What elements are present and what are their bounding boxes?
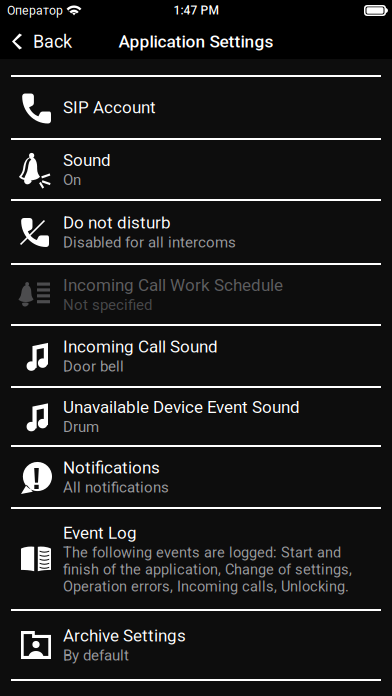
staticText: Back xyxy=(33,31,72,52)
button[interactable]: Notifications xyxy=(0,447,392,507)
button[interactable]: Archive Settings xyxy=(0,611,392,679)
staticText: Notifications xyxy=(63,458,160,478)
staticText: Sound xyxy=(63,150,111,170)
staticText: Incoming Call Work Schedule xyxy=(63,275,283,295)
staticText: Archive Settings xyxy=(63,626,186,646)
staticText: All notifications xyxy=(63,479,169,496)
button[interactable]: SIP Account xyxy=(0,77,392,138)
staticText: SIP Account xyxy=(63,97,156,117)
staticText: The following events are logged: Start a… xyxy=(63,544,352,595)
button[interactable]: Do not disturb xyxy=(0,201,392,263)
staticText: Door bell xyxy=(63,358,124,375)
staticText: Оператор xyxy=(7,3,63,18)
staticText: Do not disturb xyxy=(63,213,171,233)
button[interactable]: Incoming Call Sound xyxy=(0,326,392,386)
button[interactable]: Back xyxy=(0,24,92,59)
staticText: Unavailable Device Event Sound xyxy=(63,397,300,417)
button[interactable]: Incoming Call Work Schedule xyxy=(0,265,392,324)
staticText: 1:47 PM xyxy=(173,3,218,18)
button[interactable]: Event Log xyxy=(0,509,392,609)
button[interactable]: Sound xyxy=(0,140,392,199)
staticText: Disabled for all intercoms xyxy=(63,234,236,251)
staticText: Drum xyxy=(63,418,99,436)
button[interactable]: Unavailable Device Event Sound xyxy=(0,388,392,445)
staticText: Incoming Call Sound xyxy=(63,337,218,357)
staticText: By default xyxy=(63,647,129,664)
staticText: Event Log xyxy=(63,523,137,543)
staticText: Not specified xyxy=(63,296,152,314)
staticText: Application Settings xyxy=(118,31,273,52)
staticText: On xyxy=(63,171,81,189)
